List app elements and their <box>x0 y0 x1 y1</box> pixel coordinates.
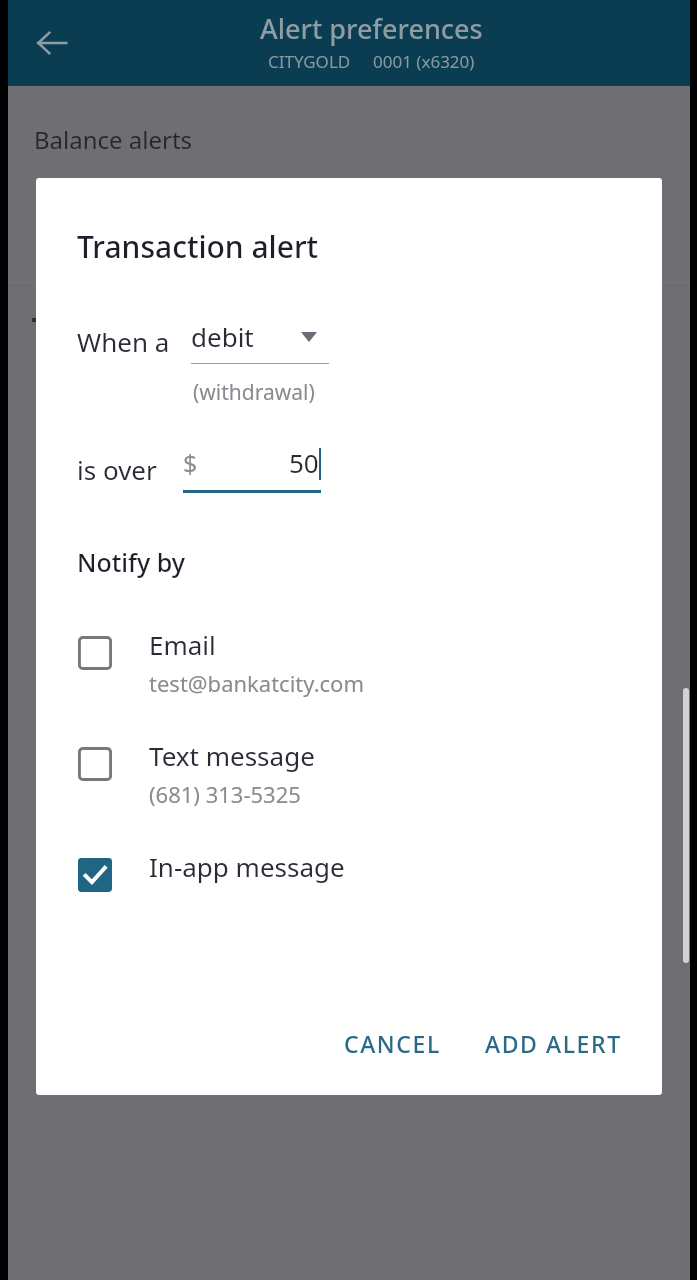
button[interactable]: Back <box>24 15 80 71</box>
staticText: Balance alerts <box>34 123 193 156</box>
staticText: is over <box>77 452 157 487</box>
staticText: Email <box>149 627 216 662</box>
button[interactable]: CANCEL <box>328 1016 457 1071</box>
staticText: Alert preferences <box>260 10 483 47</box>
button[interactable]: Email <box>36 625 662 704</box>
staticText: Text message <box>149 738 315 773</box>
button[interactable]: In-app message <box>36 847 662 891</box>
staticText: Notify by <box>77 545 185 579</box>
staticText: (withdrawal) <box>193 378 315 407</box>
staticText: Transaction alert <box>77 226 319 267</box>
button[interactable]: debit <box>191 319 329 364</box>
staticText: test@bankatcity.com <box>149 668 364 698</box>
staticText: $ <box>183 446 198 480</box>
staticText: 0001 (x6320) <box>373 50 475 73</box>
staticText: CITYGOLD <box>268 50 351 73</box>
button[interactable]: Text message <box>36 736 662 815</box>
staticText: CANCEL <box>344 1028 441 1059</box>
button[interactable]: $ <box>183 445 321 493</box>
staticText: ADD ALERT <box>485 1028 622 1059</box>
staticText: debit <box>191 319 254 354</box>
staticText: (681) 313-5325 <box>149 779 301 809</box>
button[interactable]: ADD ALERT <box>469 1016 638 1071</box>
staticText: In-app message <box>149 849 345 884</box>
staticText: When a <box>77 324 170 359</box>
staticText: 50 <box>289 445 319 480</box>
